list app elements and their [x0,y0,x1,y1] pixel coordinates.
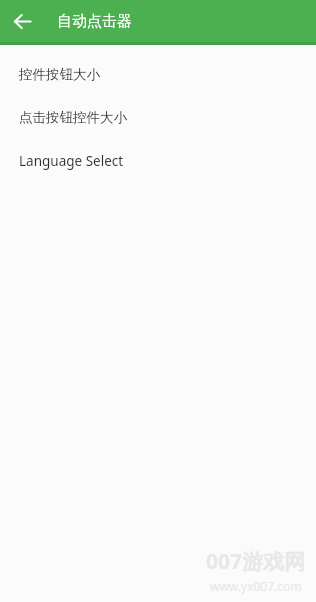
staticText: Language Select [19,152,124,170]
button[interactable]: 控件按钮大小 [0,53,316,96]
staticText: 自动点击器 [57,12,132,31]
button[interactable]: Language Select [0,139,316,182]
button[interactable]: Back [0,0,44,42]
staticText: www.yx007.com [210,578,302,594]
staticText: 控件按钮大小 [19,66,100,83]
button[interactable]: 点击按钮控件大小 [0,96,316,139]
staticText: 点击按钮控件大小 [19,109,127,126]
staticText: 007游戏网 [206,547,306,576]
